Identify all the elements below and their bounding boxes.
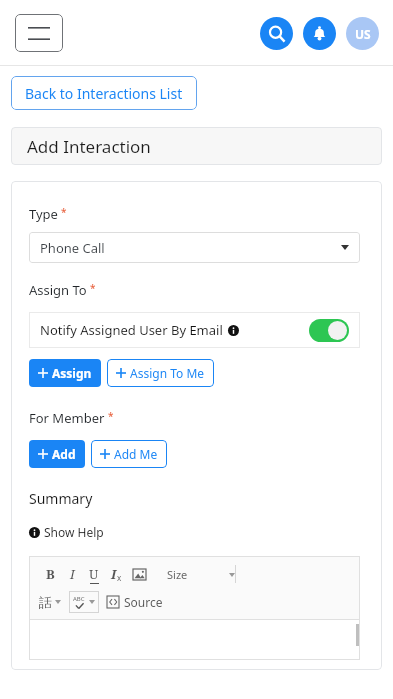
button[interactable]: Bold [39, 563, 61, 585]
button[interactable]: Add [29, 440, 85, 468]
staticText: Show Help [44, 524, 104, 540]
button[interactable]: Add Me [91, 440, 167, 468]
staticText: I [70, 565, 75, 583]
staticText: Add [52, 446, 76, 462]
staticText: Notify Assigned User By Email [40, 321, 223, 339]
staticText: US [355, 26, 371, 42]
button[interactable]: Assign [29, 359, 101, 387]
staticText: Type [29, 205, 58, 223]
button[interactable]: Menu [15, 14, 63, 52]
staticText: Summary [29, 489, 93, 508]
button[interactable]: Insert image [127, 562, 151, 586]
button[interactable]: Back to Interactions List [11, 76, 197, 110]
staticText: x [117, 572, 122, 583]
button[interactable]: Remove format [105, 563, 127, 585]
staticText: Assign To Me [130, 365, 205, 381]
staticText: * [108, 409, 114, 423]
button[interactable]: Italic [61, 563, 83, 585]
button[interactable]: Notify toggle [309, 319, 349, 342]
staticText: I [111, 565, 117, 583]
staticText: B [46, 565, 55, 583]
staticText: Back to Interactions List [25, 84, 183, 103]
button[interactable]: Spell check [69, 591, 99, 613]
button[interactable]: US [346, 17, 379, 50]
staticText: Add Me [114, 446, 158, 462]
button[interactable]: Underline [83, 563, 105, 585]
button[interactable]: Source [107, 594, 163, 610]
button[interactable]: Language [39, 594, 61, 610]
button[interactable]: Phone Call [29, 232, 360, 263]
staticText: 話 [39, 594, 52, 610]
staticText: ABC [73, 595, 85, 603]
staticText: U [89, 565, 99, 583]
staticText: Assign [52, 365, 92, 381]
staticText: Assign To [29, 281, 87, 299]
staticText: * [90, 281, 96, 295]
button[interactable]: Search [260, 17, 293, 50]
staticText: Source [124, 594, 163, 610]
button[interactable]: Assign To Me [107, 359, 214, 387]
button[interactable]: Notifications [303, 17, 336, 50]
staticText: For Member [29, 409, 105, 427]
staticText: * [61, 205, 67, 219]
staticText: Size [167, 567, 188, 582]
button[interactable]: Show Help [29, 524, 104, 540]
staticText: Phone Call [40, 239, 341, 257]
button[interactable] [29, 620, 360, 660]
staticText: Add Interaction [27, 135, 151, 158]
button[interactable]: Size [167, 567, 235, 582]
